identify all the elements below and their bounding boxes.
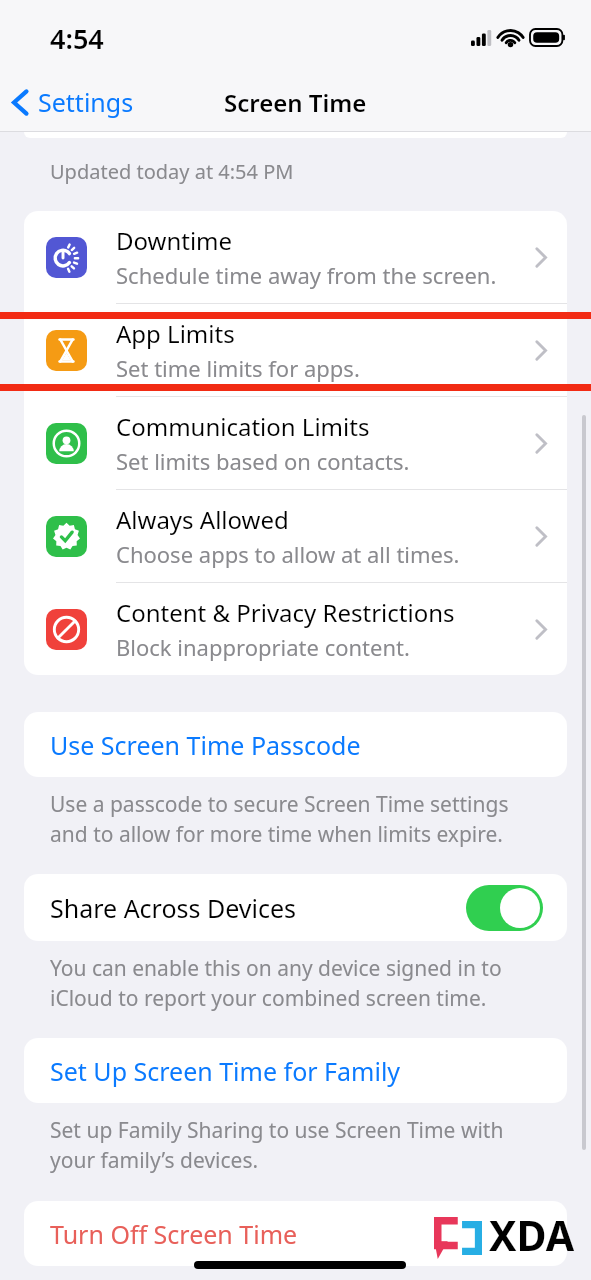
other: Content and Privacy Restrictions — [46, 609, 87, 650]
button[interactable]: Always Allowed — [24, 490, 567, 582]
staticText: Turn Off Screen Time — [50, 1217, 298, 1251]
staticText: Set up Family Sharing to use Screen Time… — [50, 1116, 546, 1174]
staticText: Share Across Devices — [50, 891, 466, 925]
staticText: Set limits based on contacts. — [116, 446, 410, 476]
staticText: Settings — [38, 85, 134, 119]
button[interactable]: Turn Off Screen Time — [24, 1201, 567, 1266]
staticText: App Limits — [116, 317, 235, 350]
staticText: Set Up Screen Time for Family — [50, 1054, 401, 1088]
other: Downtime — [46, 237, 87, 278]
staticText: Use Screen Time Passcode — [50, 728, 361, 762]
other: App Limits — [46, 330, 87, 371]
staticText: Communication Limits — [116, 410, 370, 443]
other: Share Across Devices, on — [466, 885, 543, 931]
other: Always Allowed — [46, 516, 87, 557]
staticText: Always Allowed — [116, 503, 289, 536]
staticText: Screen Time — [224, 86, 367, 119]
button[interactable]: Downtime — [24, 211, 567, 303]
button[interactable]: Use Screen Time Passcode — [24, 712, 567, 777]
other: Communication Limits — [46, 423, 87, 464]
staticText: Use a passcode to secure Screen Time set… — [50, 790, 546, 848]
staticText: XDA — [489, 1207, 575, 1263]
staticText: 4:54 — [50, 20, 104, 57]
staticText: Schedule time away from the screen. — [116, 260, 497, 290]
button[interactable]: Share Across Devices — [24, 874, 567, 941]
staticText: Updated today at 4:54 PM — [50, 158, 294, 185]
staticText: Downtime — [116, 224, 233, 257]
staticText: Block inappropriate content. — [116, 632, 410, 662]
staticText: Content & Privacy Restrictions — [116, 596, 455, 629]
staticText: You can enable this on any device signed… — [50, 954, 546, 1012]
staticText: Set time limits for apps. — [116, 353, 360, 383]
button[interactable]: App Limits — [24, 304, 567, 396]
button[interactable]: Content and Privacy Restrictions — [24, 583, 567, 675]
button[interactable]: Communication Limits — [24, 397, 567, 489]
button[interactable]: Set Up Screen Time for Family — [24, 1038, 567, 1103]
staticText: Choose apps to allow at all times. — [116, 539, 460, 569]
button[interactable]: Settings — [0, 79, 144, 125]
